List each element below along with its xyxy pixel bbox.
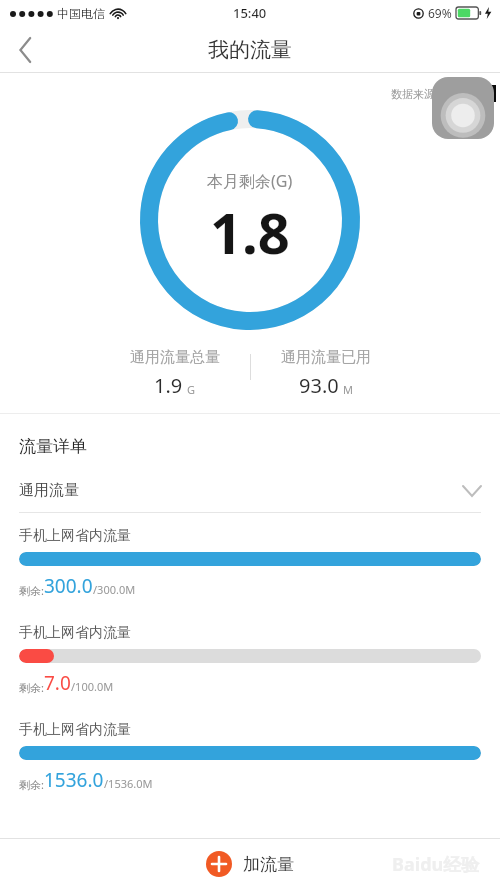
button[interactable]: 加流量 <box>206 851 294 877</box>
staticText: 300.0 <box>44 573 93 599</box>
staticText: /100.0M <box>71 679 114 694</box>
staticText: 1.8 <box>210 194 290 270</box>
staticText: 7.0 <box>44 670 71 696</box>
staticText: 剩余: <box>19 777 44 792</box>
staticText: Baidu经验 <box>392 852 480 877</box>
staticText: 手机上网省内流量 <box>19 527 131 545</box>
staticText: 1536.0 <box>44 767 104 793</box>
staticText: 数据来源 <box>391 87 435 101</box>
staticText: /1536.0M <box>104 776 153 791</box>
staticText: 手机上网省内流量 <box>19 624 131 642</box>
staticText: G <box>187 382 196 397</box>
staticText: 通用流量总量 <box>130 348 220 367</box>
button[interactable]: Back <box>0 26 52 73</box>
staticText: 1.9 <box>154 372 183 399</box>
staticText: /300.0M <box>93 582 136 597</box>
staticText: 通用流量已用 <box>281 348 371 367</box>
staticText: 手机上网省内流量 <box>19 721 131 739</box>
staticText: 中国电信 <box>57 6 105 21</box>
staticText: M <box>343 382 353 397</box>
staticText: 69% <box>428 5 452 21</box>
staticText: 剩余: <box>19 583 44 598</box>
button[interactable]: 通用流量 <box>0 481 500 500</box>
staticText: 93.0 <box>299 372 339 399</box>
staticText: 加流量 <box>243 854 294 875</box>
staticText: 剩余: <box>19 680 44 695</box>
staticText: 15:40 <box>233 4 267 22</box>
staticText: 我的流量 <box>208 37 292 63</box>
staticText: 本月剩余(G) <box>207 170 293 192</box>
staticText: 通用流量 <box>19 481 79 500</box>
staticText: 流量详单 <box>19 436 87 457</box>
